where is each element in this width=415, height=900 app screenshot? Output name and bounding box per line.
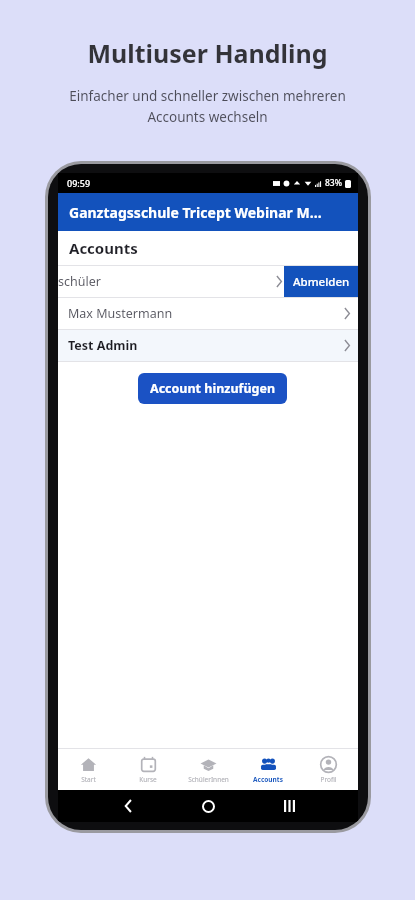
staticText: Start	[81, 775, 96, 784]
staticText: schüler	[58, 273, 101, 290]
button[interactable]: Kurse	[118, 749, 178, 790]
staticText: SchülerInnen	[188, 775, 229, 784]
staticText: Multiuser Handling	[87, 36, 328, 70]
button[interactable]: Max Mustermann	[58, 298, 358, 329]
button[interactable]: Accounts	[238, 749, 298, 790]
button[interactable]: SchülerInnen	[178, 749, 238, 790]
staticText: Accounts	[253, 775, 283, 784]
staticText: Max Mustermann	[68, 305, 173, 322]
staticText: Einfacher und schneller zwischen mehrere…	[69, 87, 346, 126]
staticText: Accounts	[69, 238, 138, 258]
button[interactable]: Abmelden	[284, 266, 358, 297]
button[interactable]: Recent apps	[278, 795, 300, 817]
staticText: Account hinzufügen	[150, 380, 276, 397]
button[interactable]: Ganztagsschule Tricept Webinar M…	[58, 193, 358, 231]
button[interactable]: Account hinzufügen	[138, 373, 287, 404]
staticText: 09:59	[67, 177, 91, 189]
staticText: Ganztagsschule Tricept Webinar M…	[69, 203, 322, 222]
staticText: Abmelden	[293, 274, 350, 290]
button[interactable]: schüler	[58, 266, 358, 297]
staticText: Profil	[320, 775, 337, 784]
staticText: Kurse	[139, 775, 157, 784]
button[interactable]: Profil	[298, 749, 358, 790]
button[interactable]: Home	[197, 795, 219, 817]
staticText: 83%	[325, 177, 342, 189]
button[interactable]: Back	[117, 795, 139, 817]
staticText: Test Admin	[68, 337, 138, 354]
button[interactable]: Start	[58, 749, 118, 790]
button[interactable]: Test Admin	[58, 330, 358, 361]
